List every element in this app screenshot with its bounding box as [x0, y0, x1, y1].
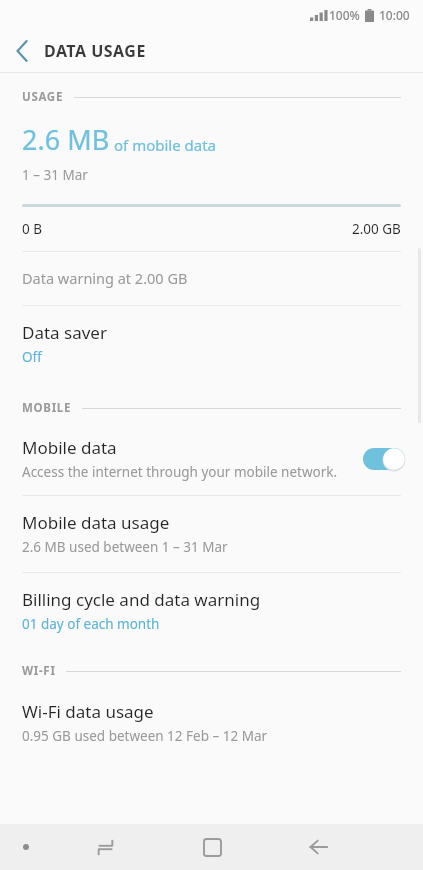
- staticText: 01 day of each month: [22, 615, 160, 633]
- button[interactable]: Recents: [52, 824, 159, 870]
- staticText: 10:00: [379, 7, 410, 23]
- staticText: USAGE: [22, 89, 64, 105]
- button[interactable]: Back: [265, 824, 371, 870]
- staticText: Billing cycle and data warning: [22, 588, 261, 611]
- button[interactable]: Mobile data usage: [0, 496, 423, 572]
- staticText: 0 B: [22, 220, 43, 238]
- staticText: of mobile data: [114, 135, 217, 155]
- staticText: WI-FI: [22, 663, 56, 679]
- staticText: Data warning at 2.00 GB: [22, 268, 188, 288]
- staticText: Data saver: [22, 321, 107, 344]
- button[interactable]: Mobile data: [0, 422, 423, 495]
- staticText: 0.95 GB used between 12 Feb – 12 Mar: [22, 727, 268, 745]
- staticText: Wi-Fi data usage: [22, 700, 154, 723]
- staticText: Mobile data: [22, 436, 117, 459]
- staticText: 2.6 MB used between 1 – 31 Mar: [22, 538, 228, 556]
- staticText: 2.00 GB: [352, 220, 401, 238]
- staticText: DATA USAGE: [44, 40, 146, 62]
- staticText: MOBILE: [22, 400, 72, 416]
- staticText: 1 – 31 Mar: [22, 166, 88, 184]
- button[interactable]: Data warning at 2.00 GB: [0, 252, 423, 305]
- staticText: 2.6 MB: [22, 121, 110, 158]
- button[interactable]: Home: [159, 824, 265, 870]
- staticText: Access the internet through your mobile …: [22, 463, 338, 481]
- staticText: Mobile data usage: [22, 511, 170, 534]
- button[interactable]: Billing cycle and data warning: [0, 573, 423, 649]
- button[interactable]: Data saver: [0, 306, 423, 382]
- button[interactable]: Wi-Fi data usage: [0, 685, 423, 761]
- staticText: Off: [22, 348, 42, 366]
- button[interactable]: 2.6 MB: [0, 111, 423, 251]
- staticText: 100%: [329, 7, 360, 23]
- button[interactable]: Mobile data on: [363, 448, 405, 470]
- button[interactable]: Navigate up: [0, 30, 44, 72]
